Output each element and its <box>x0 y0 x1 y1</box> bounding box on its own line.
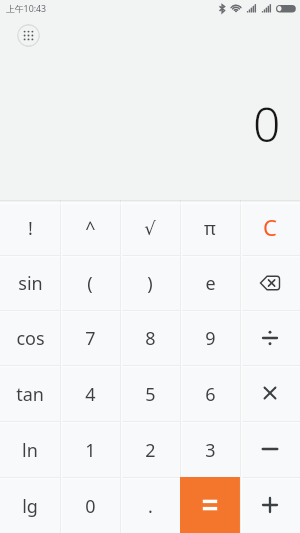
staticText: ) <box>147 271 153 296</box>
button[interactable]: ) <box>120 255 180 310</box>
staticText: . <box>148 494 153 519</box>
button[interactable]: 4 <box>60 365 120 421</box>
staticText: 8 <box>145 326 156 351</box>
staticText: 1 <box>85 438 96 463</box>
staticText: 6 <box>205 382 216 407</box>
button[interactable]: 1 <box>60 421 120 477</box>
staticText: sin <box>18 271 43 296</box>
staticText: ^ <box>85 216 96 241</box>
staticText: C <box>263 212 277 242</box>
button[interactable]: Apps <box>17 24 40 47</box>
button[interactable]: ln <box>0 421 60 477</box>
button[interactable]: 2 <box>120 421 180 477</box>
staticText: ! <box>28 216 33 241</box>
button[interactable]: Backspace <box>240 255 300 310</box>
button[interactable]: 9 <box>180 310 240 365</box>
button[interactable]: Plus <box>240 477 300 533</box>
button[interactable]: Multiply <box>240 365 300 421</box>
button[interactable]: 0 <box>60 477 120 533</box>
staticText: 3 <box>205 438 216 463</box>
button[interactable]: √ <box>120 200 180 255</box>
button[interactable]: ! <box>0 200 60 255</box>
button[interactable]: Equals <box>180 477 240 533</box>
button[interactable]: lg <box>0 477 60 533</box>
staticText: lg <box>22 494 38 519</box>
button[interactable]: . <box>120 477 180 533</box>
staticText: 4 <box>85 382 96 407</box>
staticText: ( <box>87 271 93 296</box>
button[interactable]: sin <box>0 255 60 310</box>
staticText: e <box>205 271 216 296</box>
staticText: 7 <box>85 326 96 351</box>
button[interactable]: Minus <box>240 421 300 477</box>
button[interactable]: ( <box>60 255 120 310</box>
button[interactable]: 6 <box>180 365 240 421</box>
button[interactable]: tan <box>0 365 60 421</box>
button[interactable]: 3 <box>180 421 240 477</box>
button[interactable]: 7 <box>60 310 120 365</box>
button[interactable]: 8 <box>120 310 180 365</box>
staticText: 9 <box>205 326 216 351</box>
button[interactable]: π <box>180 200 240 255</box>
staticText: π <box>204 216 216 241</box>
button[interactable]: 5 <box>120 365 180 421</box>
staticText: 2 <box>145 438 156 463</box>
button[interactable]: cos <box>0 310 60 365</box>
staticText: 0 <box>253 91 281 156</box>
button[interactable]: Divide <box>240 310 300 365</box>
button[interactable]: e <box>180 255 240 310</box>
staticText: tan <box>16 382 44 407</box>
staticText: ln <box>22 438 38 463</box>
staticText: 5 <box>145 382 156 407</box>
staticText: √ <box>144 218 156 239</box>
staticText: 0 <box>85 494 96 519</box>
staticText: cos <box>16 326 45 351</box>
staticText: 上午10:43 <box>6 3 47 15</box>
button[interactable]: C <box>240 200 300 255</box>
button[interactable]: ^ <box>60 200 120 255</box>
